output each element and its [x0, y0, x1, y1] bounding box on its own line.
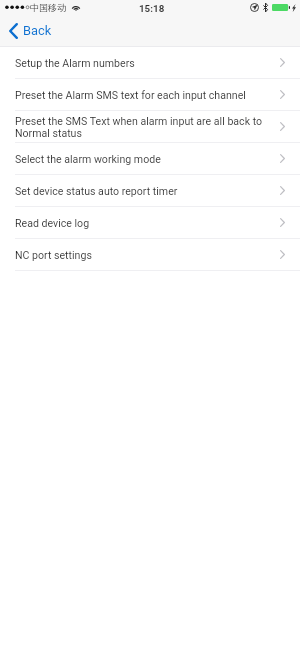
staticText: Setup the Alarm numbers [15, 57, 135, 69]
button[interactable]: Preset the SMS Text when alarm input are… [0, 111, 300, 143]
staticText: Back [23, 23, 52, 38]
button[interactable]: Setup the Alarm numbers [0, 47, 300, 79]
staticText: Read device log [15, 217, 90, 229]
button[interactable]: NC port settings [0, 239, 300, 271]
button[interactable]: Preset the Alarm SMS text for each input… [0, 79, 300, 111]
staticText: Preset the SMS Text when alarm input are… [15, 115, 265, 139]
button[interactable]: Read device log [0, 207, 300, 239]
staticText: 中国移动 [30, 2, 66, 13]
button[interactable]: Set device status auto report timer [0, 175, 300, 207]
staticText: Select the alarm working mode [15, 153, 161, 165]
staticText: Set device status auto report timer [15, 185, 178, 197]
staticText: NC port settings [15, 249, 92, 261]
button[interactable]: Select the alarm working mode [0, 143, 300, 175]
staticText: Preset the Alarm SMS text for each input… [15, 89, 246, 101]
button[interactable]: Back [0, 20, 62, 42]
staticText: 15:18 [139, 3, 165, 14]
